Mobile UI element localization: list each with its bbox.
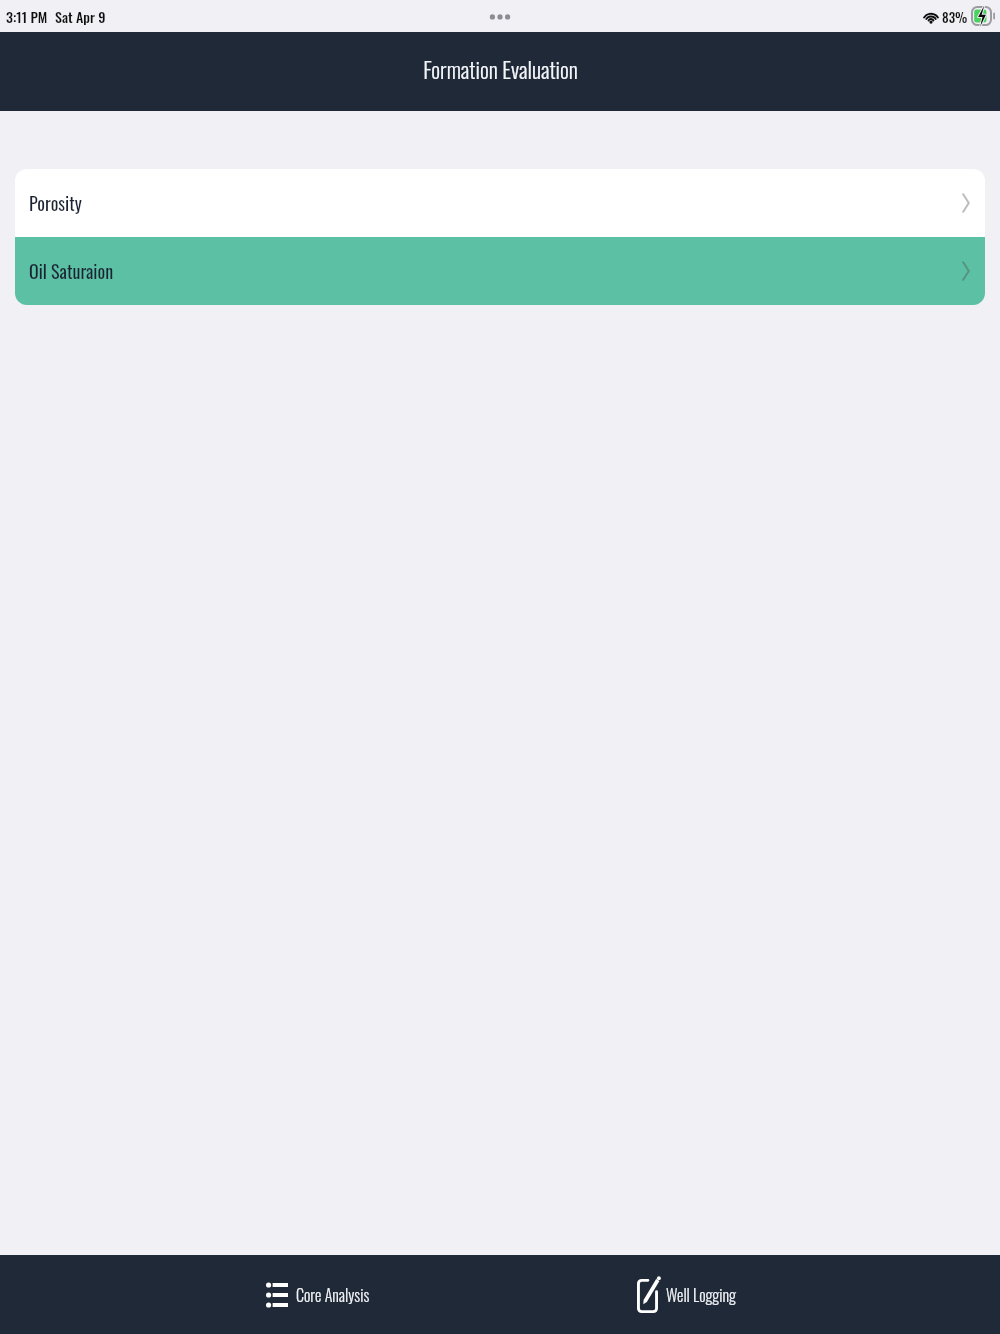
- button[interactable]: Oil Saturaion: [15, 237, 985, 305]
- staticText: Well Logging: [666, 1283, 736, 1307]
- button[interactable]: Porosity: [15, 169, 985, 237]
- other: Core Analysis list: [266, 1283, 288, 1307]
- button[interactable]: Well Logging notes: [500, 1255, 1000, 1334]
- staticText: 3:11 PM: [6, 6, 48, 27]
- staticText: Formation Evaluation: [423, 53, 578, 86]
- button[interactable]: Core Analysis list: [0, 1255, 500, 1334]
- staticText: Porosity: [29, 190, 82, 217]
- staticText: Oil Saturaion: [29, 258, 114, 285]
- staticText: Core Analysis: [296, 1283, 370, 1307]
- other: Well Logging notes: [637, 1277, 658, 1312]
- staticText: Sat Apr 9: [55, 6, 106, 27]
- staticText: 83%: [942, 7, 968, 26]
